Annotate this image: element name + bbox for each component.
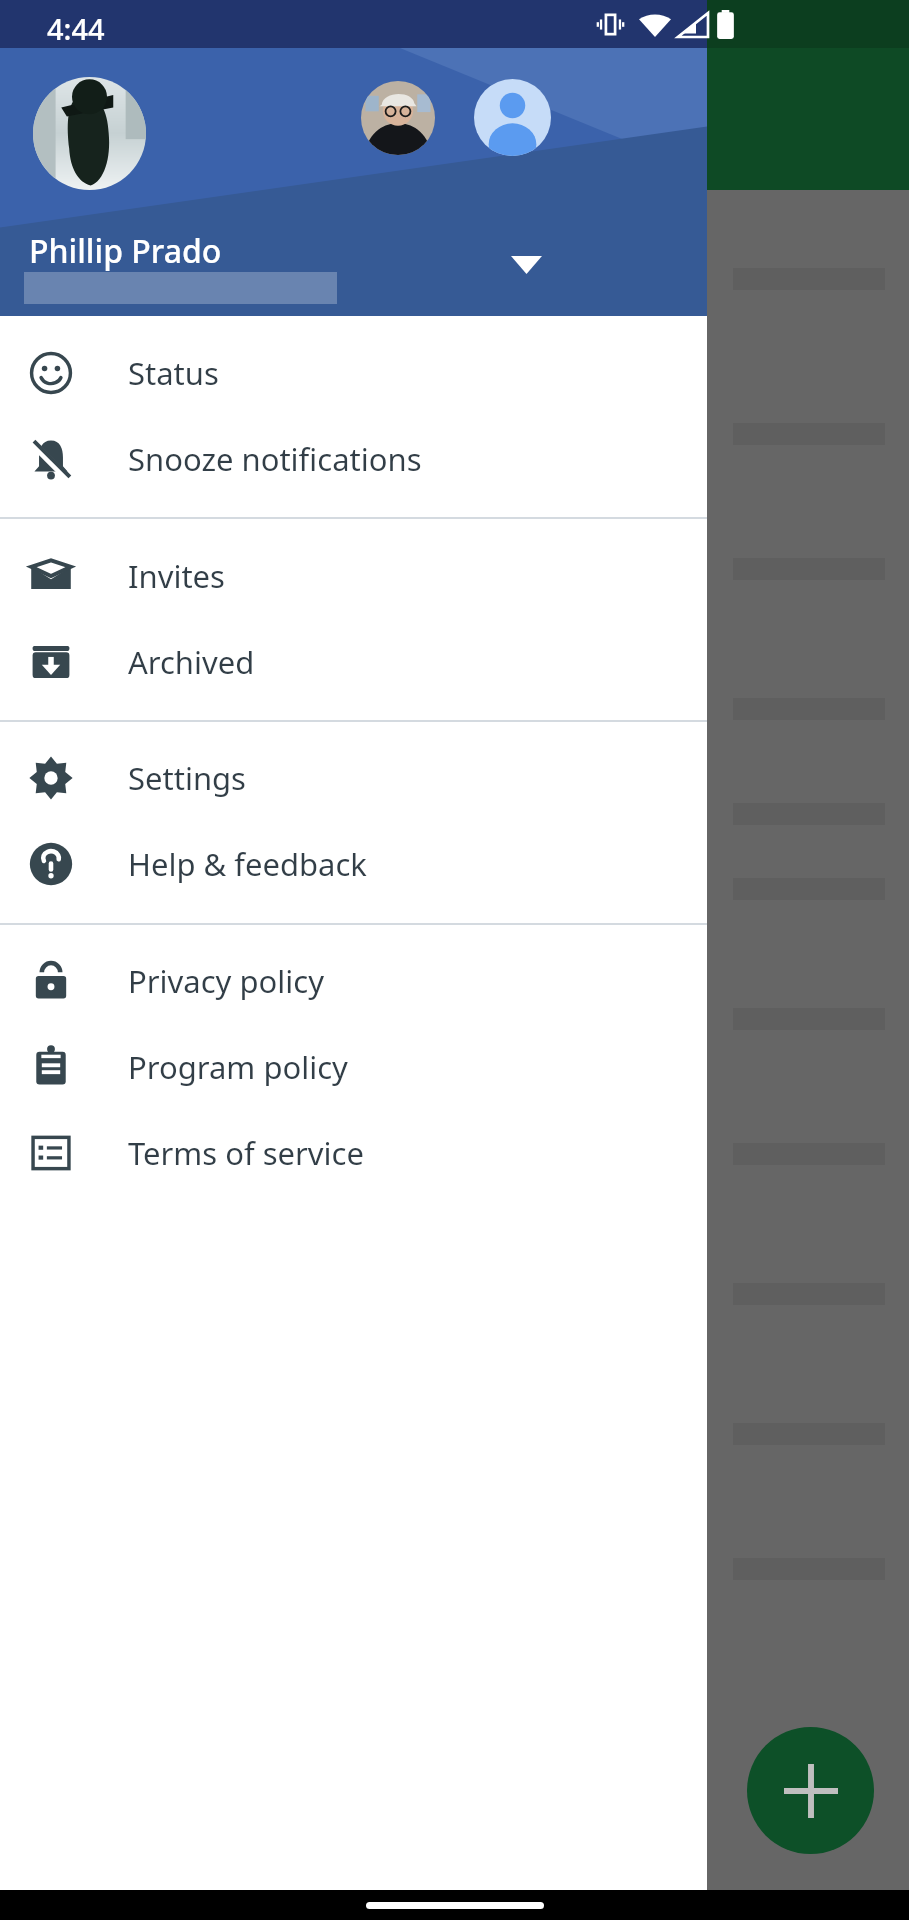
button[interactable]: Switch account	[361, 81, 435, 155]
button[interactable]: Settings	[0, 735, 707, 821]
button[interactable]: Account photo	[33, 77, 146, 190]
staticText: Archived	[128, 641, 255, 683]
button[interactable]: Help & feedback	[0, 821, 707, 907]
staticText: Status	[128, 352, 219, 394]
button[interactable]: Snooze notifications	[0, 416, 707, 502]
button[interactable]: Add account	[474, 79, 551, 156]
staticText: Help & feedback	[128, 843, 367, 885]
staticText: Program policy	[128, 1046, 348, 1088]
button[interactable]: Terms of service	[0, 1110, 707, 1196]
staticText: Invites	[128, 555, 225, 597]
staticText: 4:44	[47, 9, 105, 48]
button[interactable]: Status	[0, 330, 707, 416]
staticText: Terms of service	[128, 1132, 364, 1174]
staticText: Settings	[128, 757, 246, 799]
staticText: Privacy policy	[128, 960, 324, 1002]
staticText: Snooze notifications	[128, 438, 422, 480]
staticText: Phillip Prado	[29, 229, 222, 273]
button[interactable]: Expand account list	[478, 223, 574, 307]
button[interactable]: Program policy	[0, 1024, 707, 1110]
button[interactable]: Privacy policy	[0, 938, 707, 1024]
button[interactable]: Archived	[0, 619, 707, 705]
button[interactable]: Invites	[0, 533, 707, 619]
button[interactable]: New conversation	[747, 1727, 874, 1854]
